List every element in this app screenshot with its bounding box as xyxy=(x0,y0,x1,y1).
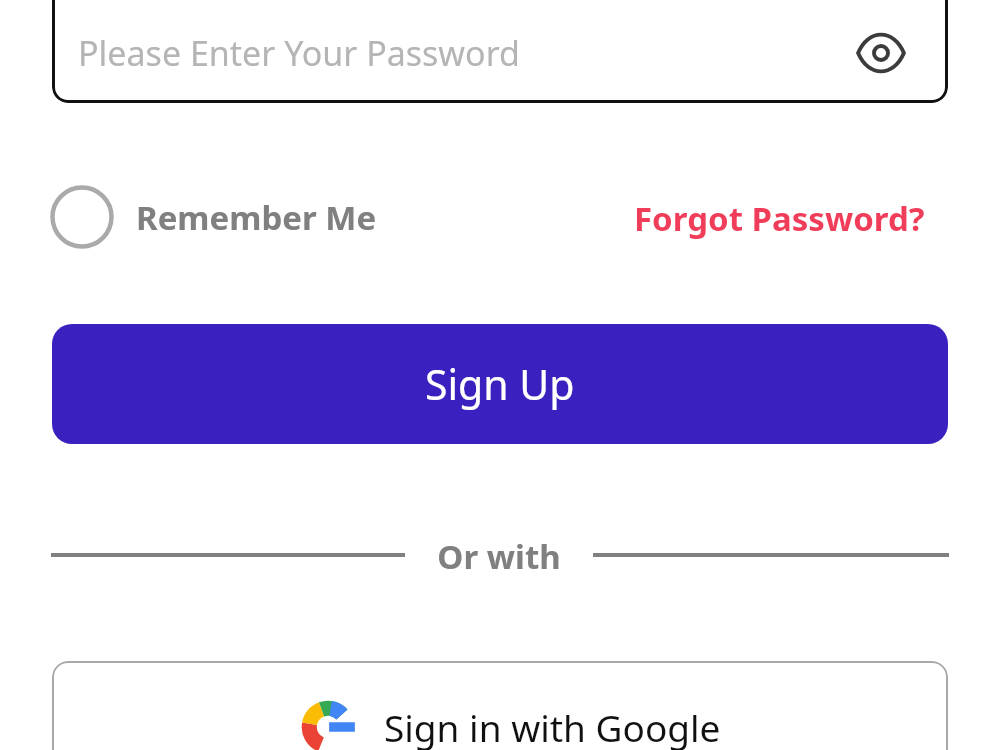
staticText: Remember Me xyxy=(136,195,377,240)
button[interactable]: Forgot Password? xyxy=(634,190,925,246)
staticText: Sign in with Google xyxy=(384,702,721,750)
staticText: Sign Up xyxy=(425,356,575,412)
button[interactable]: Sign in with Google xyxy=(52,661,948,750)
button[interactable]: Show password xyxy=(852,24,910,82)
button[interactable]: Please Enter Your Password xyxy=(52,0,948,103)
button[interactable]: Sign Up xyxy=(52,324,948,444)
staticText: Or with xyxy=(437,534,561,579)
staticText: Forgot Password? xyxy=(634,196,925,241)
button[interactable]: Remember Me xyxy=(48,183,377,251)
staticText: Please Enter Your Password xyxy=(78,30,520,76)
